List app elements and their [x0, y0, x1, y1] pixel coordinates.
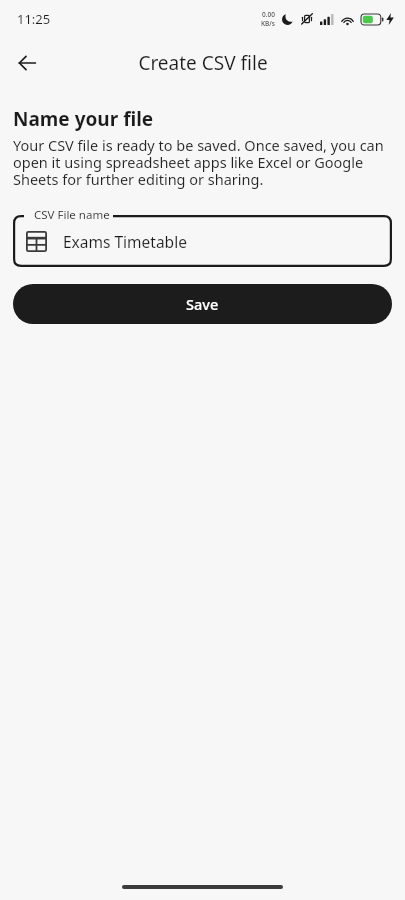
- button[interactable]: Save: [13, 284, 392, 324]
- staticText: Name your file: [13, 106, 154, 132]
- button[interactable]: Back: [6, 42, 48, 84]
- button[interactable]: Exams Timetable: [13, 207, 392, 267]
- staticText: Your CSV file is ready to be saved. Once…: [13, 135, 392, 189]
- staticText: Exams Timetable: [63, 231, 187, 252]
- staticText: Create CSV file: [138, 50, 268, 76]
- staticText: CSV File name: [34, 207, 110, 223]
- staticText: Save: [186, 294, 219, 314]
- staticText: 11:25: [17, 10, 51, 28]
- staticText: KB/s: [261, 19, 276, 28]
- staticText: 0.00: [262, 10, 275, 19]
